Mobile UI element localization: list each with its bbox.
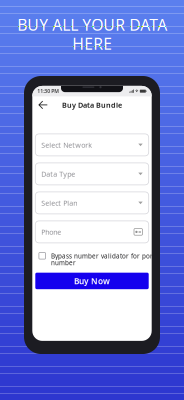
staticText: BUY ALL YOUR DATA HERE [17,14,167,54]
button[interactable]: Bypass number validator for ported numbe… [32,252,152,267]
staticText: Bypass number validator for ported numbe… [51,252,163,267]
staticText: Buy Now [74,275,110,287]
staticText: Data Type [41,169,75,179]
staticText: 11:30 PM [37,88,59,95]
button[interactable]: Select Plan [35,192,149,214]
staticText: Phone [41,227,61,237]
staticText: Buy Data Bundle [62,100,122,110]
staticText: Select Network [41,140,92,150]
button[interactable]: Buy Now [32,273,152,289]
button[interactable]: Phone [35,221,149,243]
button[interactable]: Select Network [35,134,149,156]
button[interactable]: Back [35,97,50,112]
button[interactable]: Data Type [35,163,149,185]
staticText: Select Plan [41,198,77,208]
